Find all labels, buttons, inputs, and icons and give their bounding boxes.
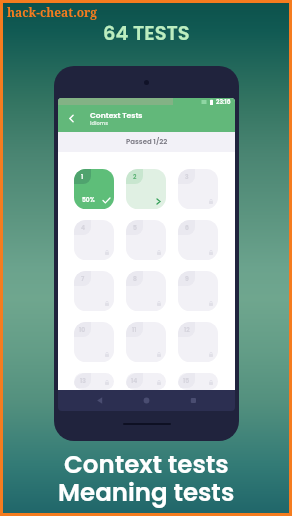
staticText: 9	[185, 275, 189, 283]
staticText: 2	[133, 173, 137, 181]
staticText: 11	[132, 326, 137, 334]
button[interactable]: 3	[178, 169, 218, 209]
button[interactable]: 11	[126, 322, 166, 362]
staticText: 1	[81, 173, 84, 181]
staticText: 14	[131, 377, 138, 385]
button[interactable]: Back	[65, 112, 78, 125]
button[interactable]: 10	[74, 322, 114, 362]
staticText: 4	[81, 224, 85, 232]
button[interactable]: 2	[126, 169, 166, 209]
staticText: 8	[133, 275, 137, 283]
staticText: 15	[183, 377, 190, 385]
button[interactable]: 8	[126, 271, 166, 311]
staticText: 6	[185, 224, 189, 232]
staticText: 23:16	[216, 98, 231, 105]
button[interactable]: 6	[178, 220, 218, 260]
button[interactable]: 5	[126, 220, 166, 260]
staticText: Context Tests	[90, 110, 143, 121]
staticText: 7	[81, 275, 85, 283]
button[interactable]: 7	[74, 271, 114, 311]
staticText: 50%	[82, 196, 95, 204]
staticText: 5	[133, 224, 137, 232]
staticText: 3	[185, 173, 189, 181]
staticText: Idioms	[90, 120, 108, 127]
staticText: Meaning tests	[58, 475, 235, 509]
staticText: hack-cheat.org	[7, 4, 98, 20]
staticText: 10	[79, 326, 86, 334]
staticText: 13	[80, 377, 86, 385]
button[interactable]: 15	[178, 373, 218, 390]
staticText: Passed 1/22	[126, 137, 168, 147]
staticText: Context tests	[64, 447, 229, 481]
button[interactable]: 12	[178, 322, 218, 362]
button[interactable]: 13	[74, 373, 114, 390]
staticText: 12	[184, 326, 190, 334]
staticText: 64 TESTS	[103, 20, 190, 47]
button[interactable]: 9	[178, 271, 218, 311]
button[interactable]: 14	[126, 373, 166, 390]
button[interactable]: 4	[74, 220, 114, 260]
button[interactable]: 1	[74, 169, 114, 209]
